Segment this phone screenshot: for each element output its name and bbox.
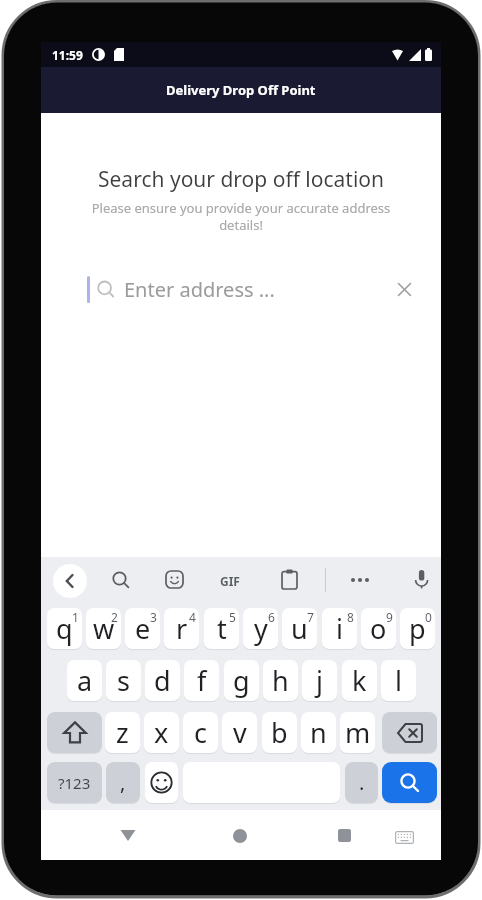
staticText: m — [345, 714, 371, 751]
button[interactable] — [382, 762, 437, 803]
button[interactable] — [53, 564, 87, 598]
staticText: 1 — [72, 609, 79, 625]
button[interactable] — [233, 829, 247, 843]
button[interactable] — [165, 570, 184, 589]
staticText: l — [395, 662, 402, 699]
staticText: k — [352, 662, 367, 699]
button[interactable]: k — [342, 660, 377, 701]
button[interactable] — [349, 571, 371, 589]
button[interactable]: j — [302, 660, 337, 701]
staticText: b — [271, 714, 288, 751]
staticText: 6 — [268, 609, 275, 625]
staticText: j — [316, 662, 323, 699]
button[interactable]: Enter address ... — [41, 274, 441, 304]
button[interactable]: w — [86, 608, 121, 649]
staticText: 3 — [150, 609, 157, 625]
staticText: q — [56, 610, 73, 647]
staticText: f — [197, 662, 207, 699]
staticText: . — [359, 769, 365, 796]
button[interactable] — [281, 569, 298, 590]
button[interactable]: g — [224, 660, 259, 701]
button[interactable]: a — [67, 660, 102, 701]
staticText: i — [336, 610, 343, 647]
staticText: Delivery Drop Off Point — [166, 81, 316, 99]
button[interactable]: y — [243, 608, 278, 649]
button[interactable]: l — [381, 660, 416, 701]
button[interactable] — [395, 831, 414, 844]
button[interactable]: r — [164, 608, 199, 649]
button[interactable] — [111, 570, 131, 590]
staticText: GIF — [220, 573, 240, 589]
staticText: u — [291, 610, 308, 647]
staticText: t — [217, 610, 227, 647]
button[interactable]: s — [106, 660, 141, 701]
button[interactable]: o — [361, 608, 396, 649]
button[interactable]: i — [322, 608, 357, 649]
staticText: w — [93, 610, 115, 647]
button[interactable]: , — [106, 762, 140, 803]
staticText: 11:59 — [52, 47, 83, 63]
staticText: o — [370, 610, 387, 647]
staticText: g — [233, 662, 250, 699]
button[interactable] — [412, 569, 431, 590]
staticText: a — [77, 662, 93, 699]
button[interactable] — [397, 282, 412, 297]
staticText: 0 — [425, 609, 432, 625]
staticText: 9 — [386, 609, 393, 625]
button[interactable]: p — [400, 608, 435, 649]
button[interactable]: v — [222, 712, 257, 753]
staticText: p — [409, 610, 426, 647]
button[interactable]: f — [184, 660, 219, 701]
staticText: Search your drop off location — [98, 165, 384, 194]
staticText: x — [154, 714, 169, 751]
button[interactable]: . — [345, 762, 378, 803]
staticText: 5 — [229, 609, 236, 625]
button[interactable] — [120, 829, 136, 842]
staticText: d — [154, 662, 171, 699]
staticText: e — [135, 610, 151, 647]
button[interactable] — [338, 829, 351, 842]
button[interactable]: e — [125, 608, 160, 649]
staticText: z — [116, 714, 129, 751]
button[interactable]: z — [105, 712, 140, 753]
staticText: y — [254, 610, 268, 647]
staticText: v — [233, 714, 247, 751]
staticText: ?123 — [58, 773, 91, 793]
button[interactable]: ?123 — [47, 762, 102, 803]
button[interactable] — [47, 712, 102, 753]
button[interactable]: c — [183, 712, 218, 753]
button[interactable] — [145, 762, 178, 803]
button[interactable] — [382, 712, 437, 753]
button[interactable]: u — [282, 608, 317, 649]
staticText: 4 — [189, 609, 196, 625]
staticText: c — [194, 714, 207, 751]
staticText: 8 — [347, 609, 354, 625]
staticText: n — [310, 714, 327, 751]
button[interactable]: d — [145, 660, 180, 701]
button[interactable]: GIF — [220, 573, 240, 589]
staticText: h — [272, 662, 289, 699]
button[interactable]: b — [262, 712, 297, 753]
button[interactable]: n — [301, 712, 336, 753]
button[interactable]: t — [204, 608, 239, 649]
staticText: Please ensure you provide your accurate … — [41, 199, 441, 234]
staticText: 7 — [307, 609, 314, 625]
button[interactable]: q — [47, 608, 82, 649]
button[interactable]: h — [263, 660, 298, 701]
staticText: Enter address ... — [124, 276, 275, 303]
staticText: , — [120, 769, 126, 796]
button[interactable]: x — [144, 712, 179, 753]
staticText: s — [117, 662, 130, 699]
button[interactable]: m — [340, 712, 375, 753]
staticText: 2 — [111, 609, 118, 625]
staticText: r — [176, 610, 188, 647]
